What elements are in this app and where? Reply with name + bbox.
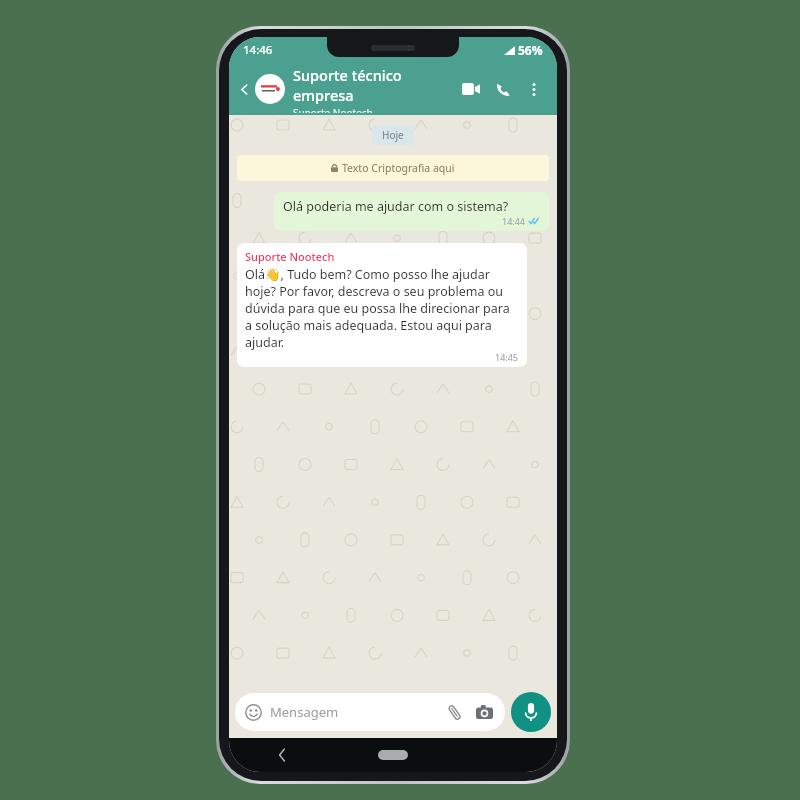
button[interactable]: Suporte Nootech (237, 243, 527, 367)
button[interactable]: Camera (473, 701, 495, 723)
button[interactable]: Mensagem (235, 693, 505, 731)
staticText: Mensagem (270, 703, 339, 721)
button[interactable]: Attach (443, 701, 465, 723)
button[interactable]: Back (271, 744, 293, 766)
staticText: Suporte Nootech (293, 106, 373, 113)
button[interactable]: Hoje (382, 128, 404, 142)
staticText: Olá👋, Tudo bem? Como posso lhe ajudar ho… (245, 266, 519, 351)
staticText: Hoje (382, 128, 404, 142)
button[interactable]: More options (519, 74, 549, 104)
staticText: 14:46 (243, 42, 273, 58)
staticText: Olá poderia me ajudar com o sistema? (283, 198, 509, 215)
button[interactable]: Back (235, 80, 253, 98)
staticText: 56% (518, 42, 543, 58)
staticText: Texto Criptografia aqui (342, 161, 455, 175)
button[interactable]: Suporte técnico empresa (293, 65, 455, 113)
staticText: 14:45 (495, 351, 519, 363)
staticText: 14:44 (502, 215, 526, 227)
button[interactable]: Profile photo (255, 74, 285, 104)
staticText: Suporte Nootech (245, 249, 335, 264)
staticText: Suporte técnico empresa (293, 65, 455, 105)
button[interactable]: Video call (455, 73, 487, 105)
button[interactable]: Voice call (487, 73, 519, 105)
button[interactable]: Home (378, 750, 408, 760)
button[interactable]: Record voice message (511, 692, 551, 732)
button[interactable]: Olá poderia me ajudar com o sistema? (274, 192, 549, 231)
button[interactable]: Texto Criptografia aqui (237, 155, 549, 181)
